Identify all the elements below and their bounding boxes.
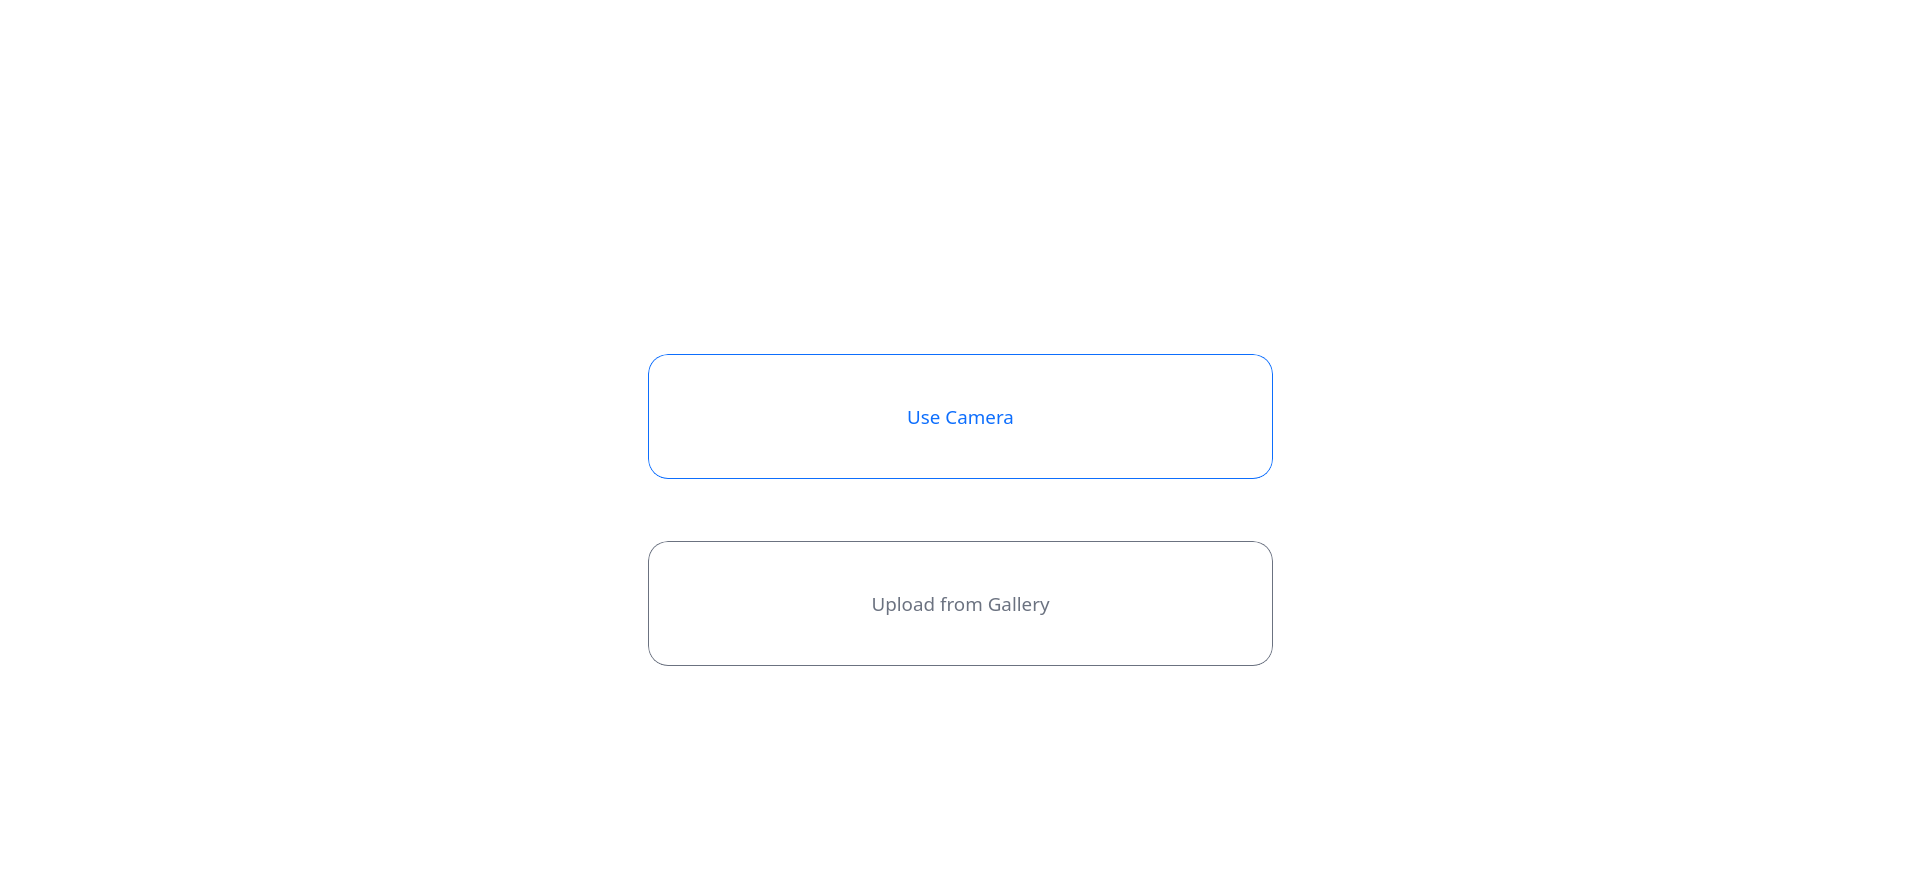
staticText: Use Camera xyxy=(907,404,1014,430)
button[interactable]: Use Camera xyxy=(648,354,1273,479)
staticText: Upload from Gallery xyxy=(871,591,1050,617)
button[interactable]: Upload from Gallery xyxy=(648,541,1273,666)
